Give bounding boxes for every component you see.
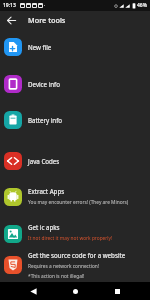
staticText: You may encounter errors! (They are Mino…	[28, 199, 129, 206]
staticText: It not direct it may not work properly!	[28, 235, 113, 242]
button[interactable]: Extract Apps	[0, 183, 150, 211]
button[interactable]: Java Codes	[0, 150, 150, 172]
button[interactable]: Battery info	[0, 109, 150, 131]
staticText: 19:13	[3, 2, 16, 9]
button[interactable]: Get ic apks	[0, 219, 150, 247]
staticText: Java Codes	[28, 157, 60, 165]
staticText: Extract Apps	[28, 187, 65, 195]
staticText: 46%	[137, 2, 147, 9]
button[interactable]: Device info	[0, 73, 150, 95]
staticText: Device info	[28, 80, 60, 88]
button[interactable]: New file	[0, 36, 150, 58]
staticText: *This action is not illegal!	[28, 273, 85, 280]
staticText: More tools	[28, 15, 66, 25]
button[interactable]: Recent apps	[108, 282, 126, 300]
button[interactable]: Back	[24, 282, 42, 300]
button[interactable]: Back	[0, 11, 22, 29]
button[interactable]: Home	[66, 282, 84, 300]
button[interactable]: Get the source code for a website	[0, 249, 150, 283]
staticText: Get the source code for a website	[28, 251, 126, 259]
staticText: Battery info	[28, 116, 63, 124]
staticText: New file	[28, 43, 52, 51]
staticText: Get ic apks	[28, 223, 60, 231]
staticText: Requires a network connection!	[28, 263, 100, 270]
